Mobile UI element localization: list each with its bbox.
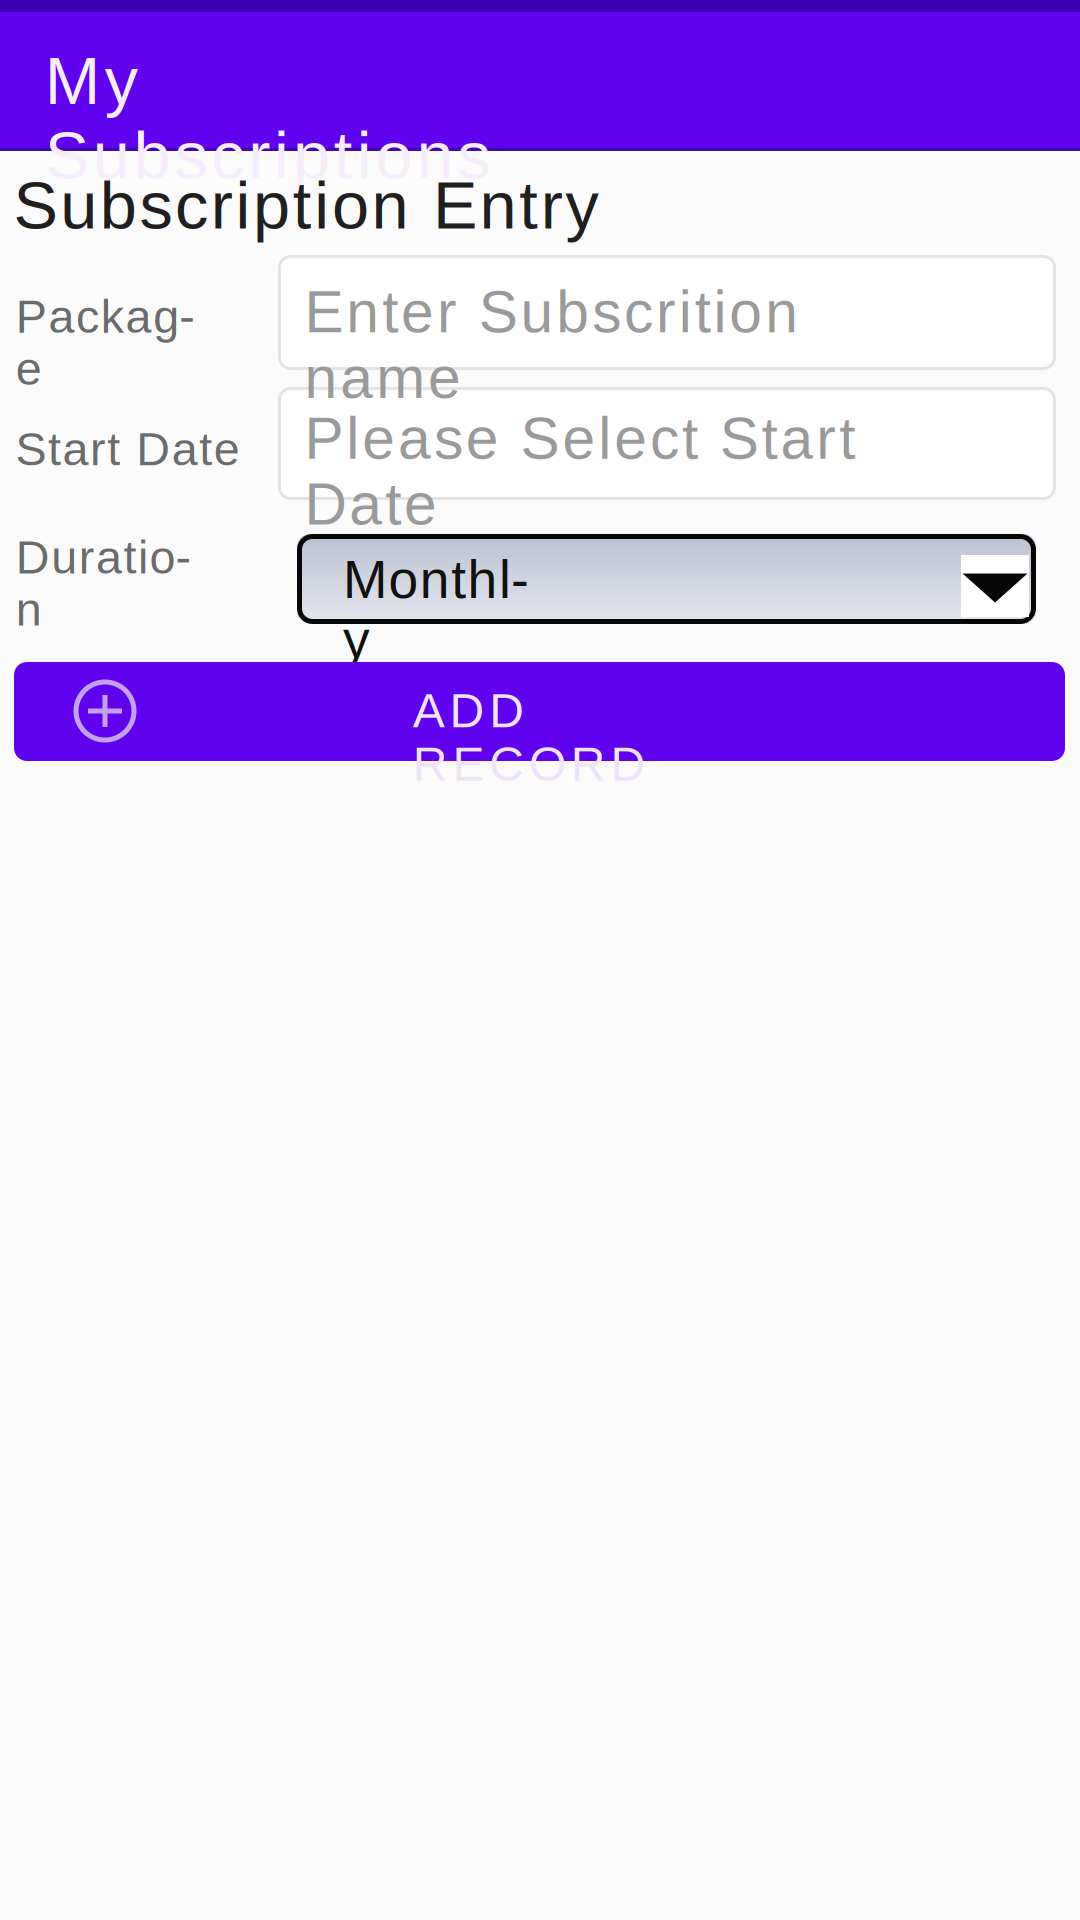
button[interactable]: Duration, Monthly	[297, 534, 1036, 624]
staticText: My Subscriptions	[45, 44, 610, 118]
staticText: Enter Subscrition name	[304, 279, 977, 345]
staticText: Monthly	[343, 550, 539, 609]
staticText: Start Date	[15, 423, 240, 475]
staticText: Duration	[16, 531, 203, 583]
staticText: ADD RECORD	[413, 684, 779, 737]
staticText: Package	[16, 290, 207, 342]
button[interactable]: Add Record	[14, 662, 1065, 761]
button[interactable]: My Subscriptions	[45, 44, 610, 118]
staticText: Please Select Start Date	[304, 406, 1009, 471]
button[interactable]: Package, Enter Subscrition name	[278, 255, 1056, 370]
staticText: Subscription Entry	[14, 168, 598, 243]
button[interactable]: Start Date, Please Select Start Date	[278, 387, 1056, 500]
